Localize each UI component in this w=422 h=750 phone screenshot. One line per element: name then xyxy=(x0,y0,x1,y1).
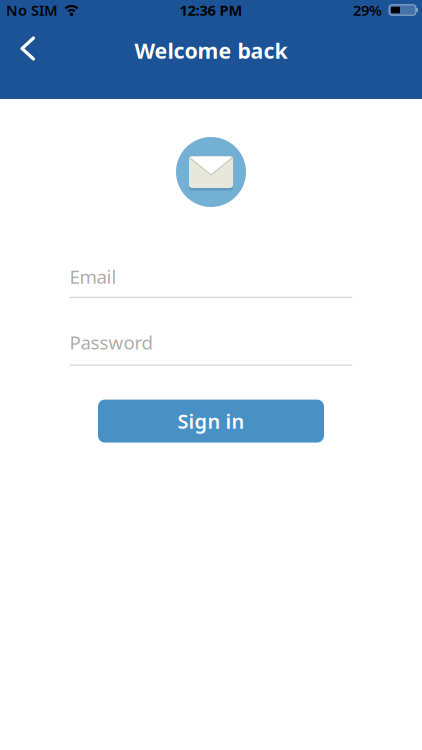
button[interactable]: Sign in xyxy=(98,400,324,443)
staticText: 12:36 PM xyxy=(179,0,242,20)
staticText: 29% xyxy=(353,0,382,20)
button[interactable]: Back xyxy=(0,39,53,80)
button[interactable]: Password xyxy=(69,330,352,366)
staticText: Welcome back xyxy=(134,36,287,65)
staticText: Password xyxy=(69,330,152,355)
staticText: Sign in xyxy=(177,408,244,434)
button[interactable]: Email xyxy=(69,264,352,298)
staticText: Email xyxy=(69,264,116,289)
staticText: No SIM xyxy=(6,0,58,20)
